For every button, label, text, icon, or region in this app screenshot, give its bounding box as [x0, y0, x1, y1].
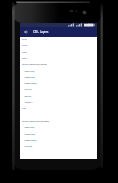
staticText: <div style="background-color:yellow; [21, 120, 49, 123]
staticText: width:100px; [25, 69, 35, 72]
staticText: z-index:1"> [25, 101, 34, 104]
staticText: position:relative; [25, 82, 37, 85]
staticText: <div style="background-color:red; [21, 63, 47, 66]
staticText: height:100px; [25, 76, 36, 79]
staticText: <html> [21, 38, 27, 41]
staticText: </div> [21, 107, 26, 110]
staticText: position:relative; [25, 139, 37, 142]
staticText: top:-50px; [25, 145, 33, 148]
staticText: <body> [21, 57, 28, 60]
button[interactable]: Back [20, 27, 31, 37]
staticText: <head> [21, 44, 28, 47]
staticText: left:51px; [25, 95, 32, 98]
staticText: top:51px; [25, 88, 33, 91]
staticText: width:100px; [25, 126, 35, 129]
staticText: height:100px; [25, 132, 36, 135]
staticText: CSS - Layers [33, 30, 49, 34]
staticText: </style> [21, 51, 27, 54]
